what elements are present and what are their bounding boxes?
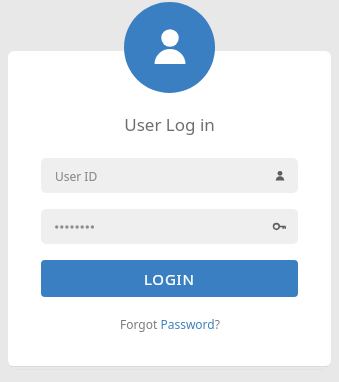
staticText: User ID <box>55 168 98 184</box>
button[interactable] <box>41 209 298 244</box>
other: User avatar <box>124 2 215 93</box>
staticText: User Log in <box>124 113 215 136</box>
staticText: Forgot Password? <box>120 316 220 332</box>
button[interactable]: LOGIN <box>41 260 298 297</box>
staticText: LOGIN <box>144 269 195 289</box>
button[interactable]: User ID <box>41 158 298 193</box>
button[interactable]: Forgot Password? <box>116 314 224 334</box>
